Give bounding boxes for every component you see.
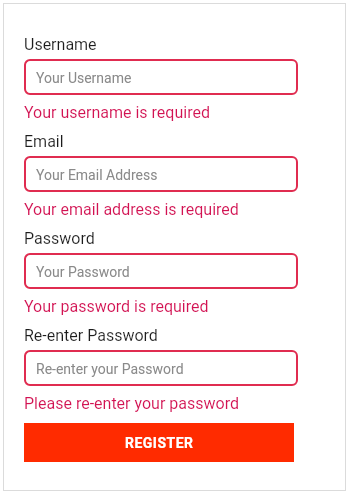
button[interactable]: Your Password	[24, 253, 298, 289]
button[interactable]: Re-enter your Password	[24, 350, 298, 386]
button[interactable]: Your Username	[24, 59, 298, 95]
staticText: Your Password	[36, 264, 130, 280]
staticText: Your password is required	[24, 297, 209, 316]
staticText: Please re-enter your password	[24, 394, 239, 413]
staticText: Your username is required	[24, 103, 210, 122]
staticText: Re-enter Password	[24, 326, 158, 345]
staticText: Re-enter your Password	[36, 361, 184, 377]
staticText: Your Username	[36, 70, 132, 86]
staticText: Your email address is required	[24, 200, 239, 219]
staticText: Username	[24, 35, 97, 54]
staticText: Email	[24, 132, 64, 151]
staticText: Your Email Address	[36, 167, 158, 183]
button[interactable]: Your Email Address	[24, 156, 298, 192]
staticText: Password	[24, 229, 95, 248]
staticText: REGISTER	[125, 435, 194, 451]
button[interactable]: REGISTER	[24, 423, 294, 462]
